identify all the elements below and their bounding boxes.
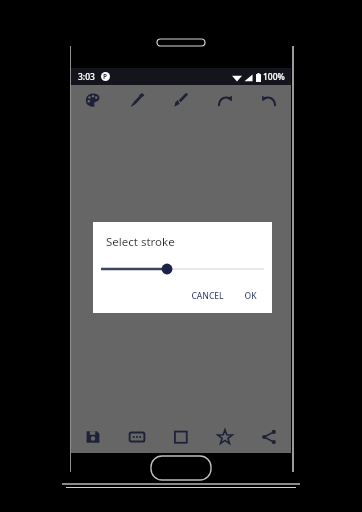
button[interactable]: Redo: [203, 85, 247, 115]
staticText: CANCEL: [191, 290, 224, 302]
button[interactable]: CANCEL: [186, 287, 229, 305]
button[interactable]: Home: [151, 456, 211, 480]
button[interactable]: Undo: [247, 85, 291, 115]
button[interactable]: Share: [247, 421, 291, 453]
button[interactable]: Shape: [159, 421, 203, 453]
button[interactable]: Brush: [159, 85, 203, 115]
staticText: 100%: [263, 71, 285, 83]
staticText: OK: [244, 290, 257, 302]
button[interactable]: OK: [239, 287, 262, 305]
staticText: Select stroke: [106, 234, 175, 250]
button[interactable]: Text: [115, 421, 159, 453]
staticText: P: [103, 72, 108, 81]
button[interactable]: Save: [71, 421, 115, 453]
button[interactable]: Palette: [71, 85, 115, 115]
button[interactable]: Favorite: [203, 421, 247, 453]
button[interactable]: Stroke width slider: [93, 260, 272, 278]
button[interactable]: Color picker: [115, 85, 159, 115]
staticText: 3:03: [78, 71, 95, 83]
